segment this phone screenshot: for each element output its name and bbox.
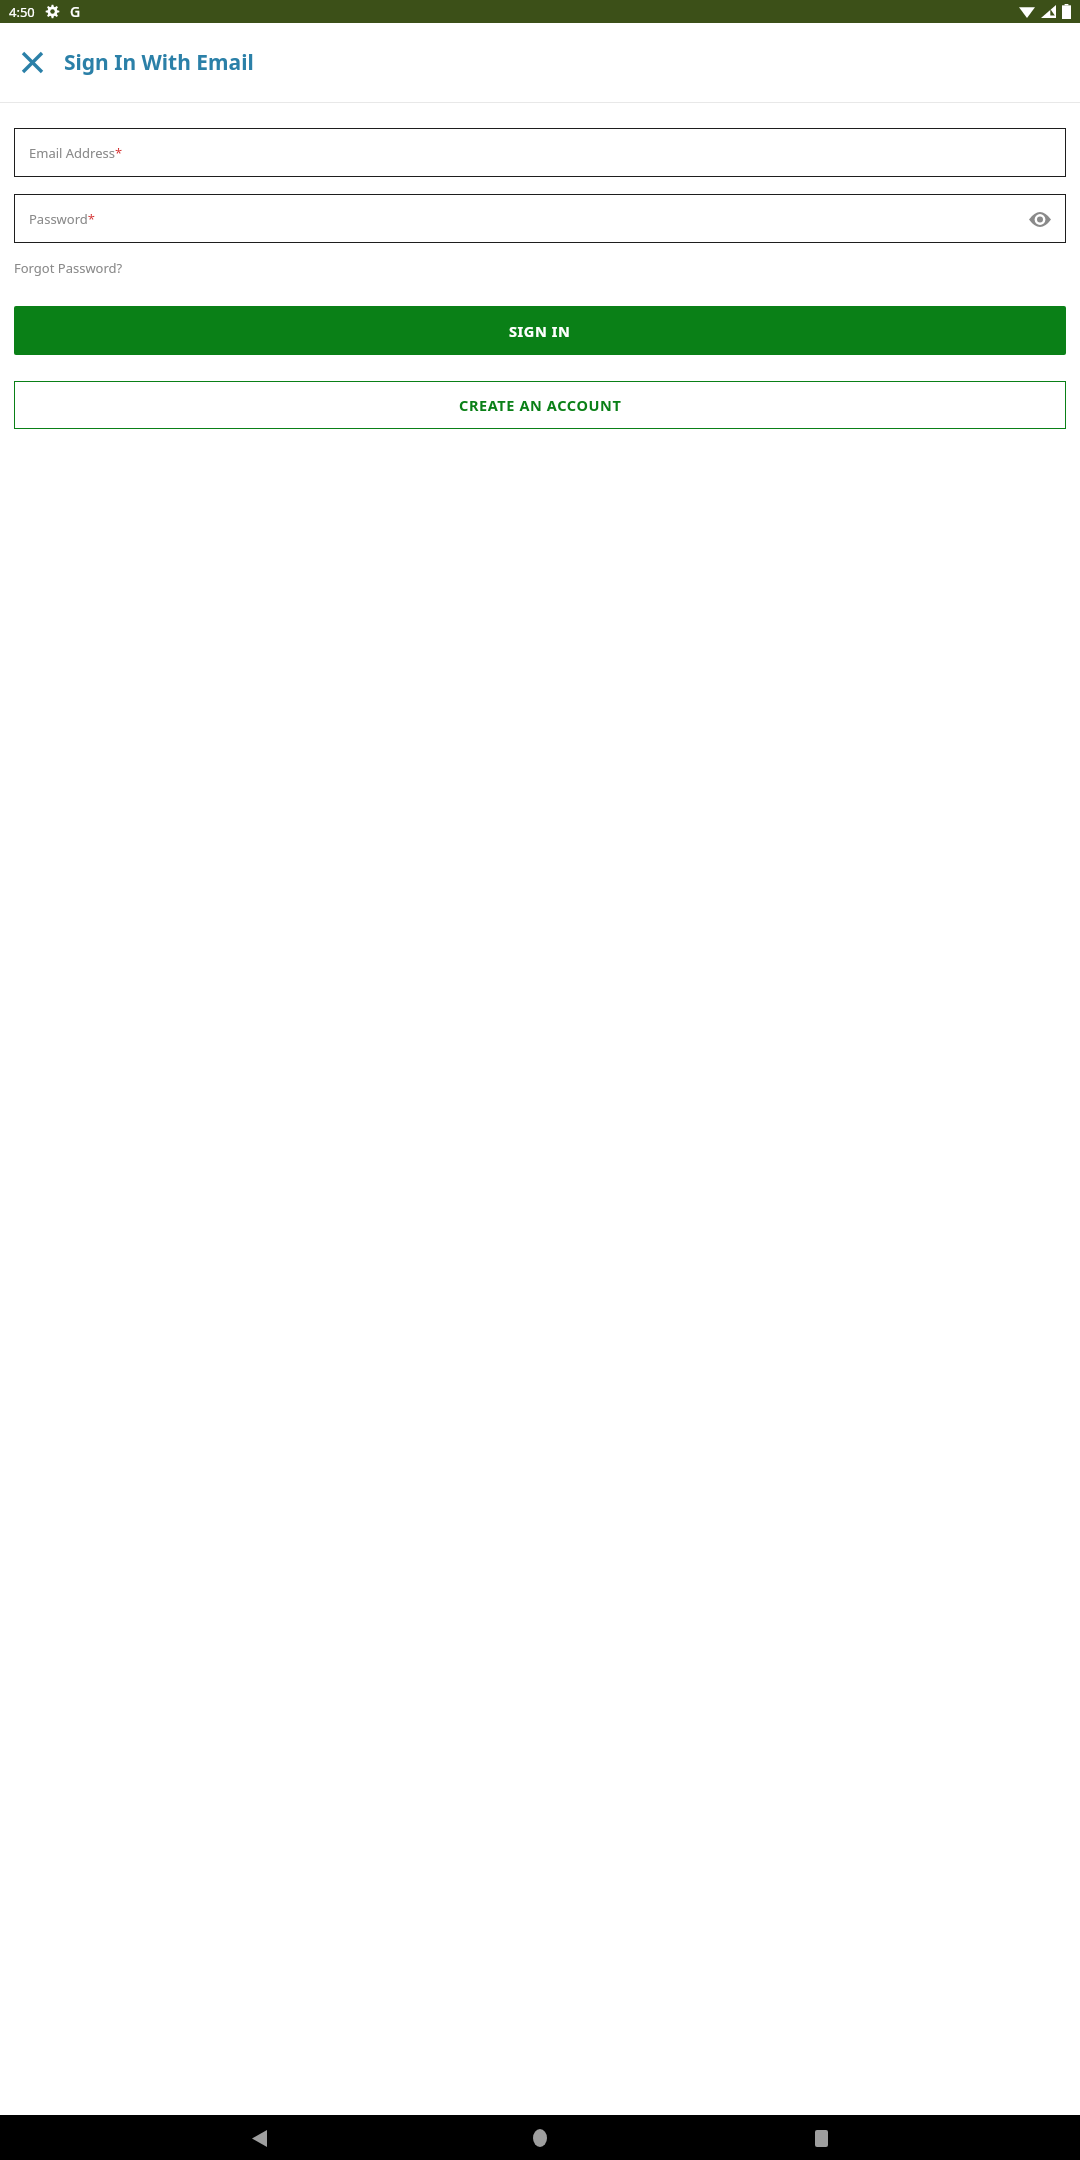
staticText: SIGN IN (509, 321, 571, 341)
staticText: Sign In With Email (64, 48, 254, 77)
button[interactable]: Email Address* (14, 128, 1066, 177)
staticText: CREATE AN ACCOUNT (459, 395, 622, 415)
staticText: G (70, 2, 81, 21)
button[interactable]: Password* (14, 194, 1066, 243)
staticText: 4:50 (9, 3, 35, 21)
button[interactable]: Back (237, 2116, 281, 2160)
button[interactable]: Close (8, 38, 56, 86)
button[interactable]: Home (518, 2116, 562, 2160)
button[interactable]: Recents (799, 2116, 843, 2160)
staticText: Email Address* (29, 144, 123, 162)
button[interactable]: SIGN IN (14, 306, 1066, 355)
button[interactable]: Forgot Password? (14, 259, 123, 277)
staticText: Password* (29, 210, 95, 228)
staticText: Forgot Password? (14, 259, 123, 277)
button[interactable]: CREATE AN ACCOUNT (14, 381, 1066, 429)
button[interactable]: Show password (1023, 202, 1057, 236)
